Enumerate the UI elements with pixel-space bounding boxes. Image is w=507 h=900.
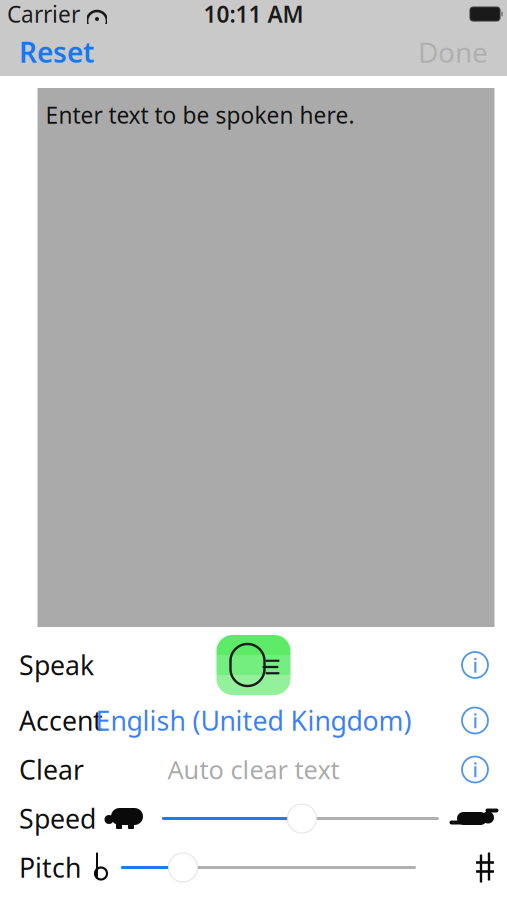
staticText: Reset <box>19 33 94 71</box>
staticText: English (United Kingdom) <box>95 703 411 738</box>
button[interactable]: English (United Kingdom) <box>87 697 419 744</box>
staticText: Speak <box>19 647 94 683</box>
staticText: Pitch <box>19 850 81 885</box>
button[interactable]: Auto clear text <box>159 747 347 792</box>
staticText: Enter text to be spoken here. <box>45 100 354 130</box>
staticText: Carrier <box>7 0 80 29</box>
staticText: i <box>472 707 477 734</box>
button[interactable]: Done <box>412 23 494 81</box>
button[interactable]: Reset <box>13 23 100 81</box>
button[interactable]: Information <box>455 645 495 685</box>
staticText: Done <box>418 33 488 71</box>
staticText: 10:11 AM <box>203 0 303 29</box>
staticText: Auto clear text <box>167 753 339 786</box>
staticText: Accent <box>19 703 103 738</box>
staticText: Clear <box>19 752 84 787</box>
staticText: Speed <box>19 801 96 836</box>
staticText: i <box>472 652 477 678</box>
staticText: i <box>472 756 477 783</box>
button[interactable]: Information <box>455 749 495 789</box>
button[interactable]: Information <box>455 700 495 740</box>
button[interactable]: Speak <box>216 635 290 695</box>
